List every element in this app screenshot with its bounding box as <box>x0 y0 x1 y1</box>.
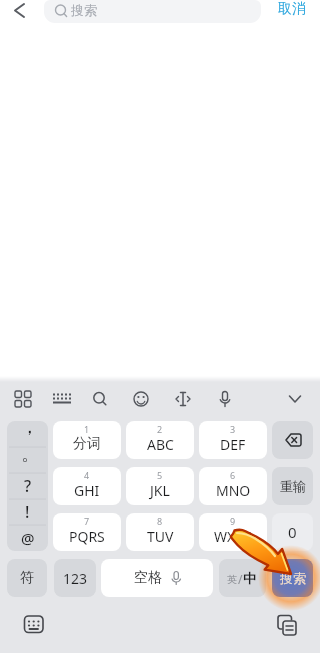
staticText: 9 <box>230 515 236 527</box>
staticText: 重输 <box>280 478 306 494</box>
button[interactable] <box>125 384 157 416</box>
button[interactable] <box>272 421 313 459</box>
button[interactable] <box>167 384 199 416</box>
staticText: ， <box>20 421 39 439</box>
staticText: ? <box>24 475 32 497</box>
staticText: 分词 <box>73 435 101 453</box>
button[interactable]: 7 <box>53 513 121 551</box>
button[interactable] <box>18 610 50 640</box>
staticText: DEF <box>220 435 246 454</box>
staticText: @ <box>21 528 35 548</box>
staticText: 搜索 <box>71 2 97 18</box>
staticText: 3 <box>230 423 236 435</box>
button[interactable] <box>209 384 241 416</box>
staticText: TUV <box>147 527 174 546</box>
staticText: 2 <box>157 423 163 435</box>
staticText: WXYZ <box>214 527 252 546</box>
button[interactable] <box>6 0 34 26</box>
staticText: ! <box>25 501 30 523</box>
button[interactable]: 搜索 <box>272 559 313 597</box>
staticText: 1 <box>84 423 90 435</box>
button[interactable] <box>7 384 39 416</box>
staticText: 7 <box>84 515 90 527</box>
staticText: 0 <box>288 522 297 542</box>
button[interactable]: 空格 <box>101 559 213 597</box>
staticText: 搜索 <box>280 570 306 586</box>
staticText: 。 <box>21 443 39 466</box>
staticText: JKL <box>150 481 170 500</box>
button[interactable]: 2 <box>126 421 194 459</box>
staticText: 6 <box>230 469 236 481</box>
staticText: 符 <box>20 569 34 587</box>
button[interactable]: 9 <box>199 513 267 551</box>
button[interactable] <box>279 384 311 416</box>
staticText: / <box>238 571 243 587</box>
staticText: PQRS <box>69 527 105 546</box>
staticText: 123 <box>63 569 88 588</box>
button[interactable]: 符 <box>7 559 47 597</box>
staticText: 空格 <box>134 569 162 587</box>
staticText: 英 <box>227 573 237 586</box>
staticText: 取消 <box>278 0 306 18</box>
button[interactable] <box>271 610 303 640</box>
staticText: 中 <box>243 570 256 586</box>
staticText: 8 <box>157 515 163 527</box>
button[interactable]: 123 <box>54 559 96 597</box>
button[interactable]: 5 <box>126 467 194 505</box>
staticText: 4 <box>84 469 90 481</box>
staticText: 5 <box>157 469 163 481</box>
button[interactable] <box>84 384 116 416</box>
button[interactable]: 3 <box>199 421 267 459</box>
button[interactable]: 搜索 <box>44 0 261 23</box>
button[interactable]: 重输 <box>272 467 313 505</box>
button[interactable]: ， <box>7 421 48 551</box>
button[interactable]: 英 <box>219 559 266 597</box>
button[interactable]: 1 <box>53 421 121 459</box>
button[interactable]: 6 <box>199 467 267 505</box>
staticText: ABC <box>147 435 174 454</box>
button[interactable] <box>45 384 77 416</box>
button[interactable]: 8 <box>126 513 194 551</box>
staticText: MNO <box>216 481 251 500</box>
button[interactable]: 0 <box>272 513 313 551</box>
button[interactable]: 4 <box>53 467 121 505</box>
staticText: GHI <box>74 481 100 500</box>
